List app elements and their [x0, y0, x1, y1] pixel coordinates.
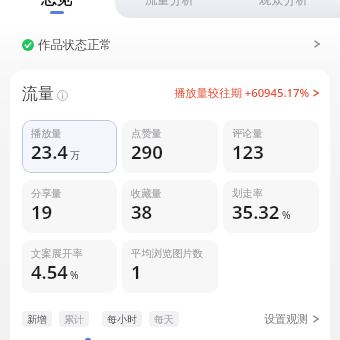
staticText: 平均浏览图片数: [131, 247, 204, 260]
button[interactable]: 每小时: [102, 311, 142, 327]
staticText: 35.32: [232, 199, 280, 224]
staticText: 累计: [64, 313, 84, 326]
button[interactable]: 总览: [0, 0, 113, 18]
button[interactable]: 每天: [149, 311, 179, 327]
button[interactable]: 分享量: [22, 180, 117, 233]
staticText: 播放量: [31, 127, 62, 140]
button[interactable]: 播放量较往期 +60945.17%: [174, 85, 319, 100]
button[interactable]: 累计: [59, 311, 89, 327]
staticText: 播放量较往期 +60945.17%: [174, 85, 310, 100]
button[interactable]: 新增: [22, 311, 52, 327]
staticText: %: [70, 268, 79, 282]
staticText: 4.54: [31, 259, 68, 284]
staticText: 点赞量: [131, 127, 162, 140]
staticText: 总览: [41, 0, 72, 7]
button[interactable]: 点赞量: [122, 120, 218, 173]
button[interactable]: 播放量: [22, 120, 117, 173]
staticText: 新增: [27, 313, 47, 326]
staticText: 划走率: [232, 187, 263, 200]
staticText: 流量: [22, 84, 54, 104]
button[interactable]: 收藏量: [122, 180, 218, 233]
button[interactable]: 划走率: [223, 180, 319, 233]
staticText: %: [282, 208, 291, 222]
staticText: 分享量: [31, 187, 62, 200]
button[interactable]: 评论量: [223, 120, 319, 173]
button[interactable]: 作品状态正常: [0, 18, 340, 70]
staticText: 设置观测: [264, 312, 308, 326]
staticText: 万: [70, 149, 80, 162]
staticText: 123: [232, 139, 264, 164]
staticText: 评论量: [232, 127, 263, 140]
staticText: 文案展开率: [31, 247, 83, 260]
staticText: 作品状态正常: [38, 37, 112, 52]
button[interactable]: 设置观测: [264, 312, 319, 326]
button[interactable]: 流量分析: [113, 0, 226, 18]
staticText: 1: [131, 259, 142, 284]
button[interactable]: 平均浏览图片数: [122, 240, 218, 293]
staticText: 23.4: [31, 139, 68, 164]
staticText: 每天: [154, 313, 174, 326]
staticText: 290: [131, 139, 163, 164]
button[interactable]: 观众分析: [226, 0, 340, 18]
staticText: 38: [131, 199, 153, 224]
button[interactable]: 文案展开率: [22, 240, 117, 293]
staticText: 观众分析: [259, 0, 308, 7]
staticText: 每小时: [107, 313, 137, 326]
staticText: 19: [31, 199, 53, 224]
staticText: 流量分析: [145, 0, 194, 7]
staticText: 收藏量: [131, 187, 162, 200]
